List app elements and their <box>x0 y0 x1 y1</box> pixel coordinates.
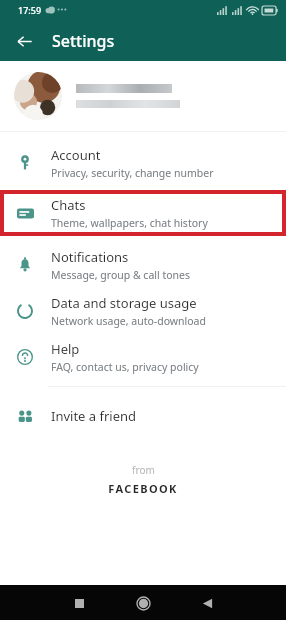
staticText: Settings <box>52 30 115 52</box>
button[interactable] <box>0 61 286 131</box>
staticText: Chats <box>51 196 86 214</box>
button[interactable]: Home <box>130 590 156 616</box>
staticText: Data and storage usage <box>51 294 197 312</box>
staticText: Theme, wallpapers, chat history <box>51 216 208 230</box>
button[interactable]: Back <box>8 25 40 57</box>
button[interactable]: Recent apps <box>66 590 92 616</box>
staticText: FACEBOOK <box>108 481 178 496</box>
button[interactable]: Account <box>0 140 286 186</box>
button[interactable]: Invite a friend <box>0 393 286 439</box>
staticText: 17:59 <box>18 4 42 16</box>
staticText: FAQ, contact us, privacy policy <box>51 360 199 374</box>
button[interactable]: Back <box>194 590 220 616</box>
staticText: Message, group & call tones <box>51 268 191 282</box>
staticText: Help <box>51 340 80 358</box>
button[interactable]: Data and storage usage <box>0 288 286 334</box>
button[interactable]: Notifications <box>0 242 286 288</box>
staticText: Privacy, security, change number <box>51 166 214 180</box>
staticText: from <box>132 463 155 477</box>
button[interactable]: Chats <box>4 194 282 232</box>
staticText: Account <box>51 146 101 164</box>
button[interactable]: Help <box>0 334 286 380</box>
staticText: Network usage, auto-download <box>51 314 206 328</box>
staticText: Notifications <box>51 248 129 266</box>
staticText: Invite a friend <box>51 407 137 425</box>
